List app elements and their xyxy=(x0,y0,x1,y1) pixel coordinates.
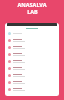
button[interactable] xyxy=(5,58,59,65)
button[interactable] xyxy=(5,86,59,93)
button[interactable] xyxy=(5,51,59,58)
button[interactable] xyxy=(5,65,59,72)
button[interactable] xyxy=(5,44,59,51)
staticText: ANASALVA xyxy=(17,1,47,8)
button[interactable] xyxy=(5,37,59,44)
staticText: LAB xyxy=(27,8,38,15)
button[interactable] xyxy=(5,30,59,37)
button[interactable] xyxy=(5,79,59,86)
button[interactable] xyxy=(5,72,59,79)
